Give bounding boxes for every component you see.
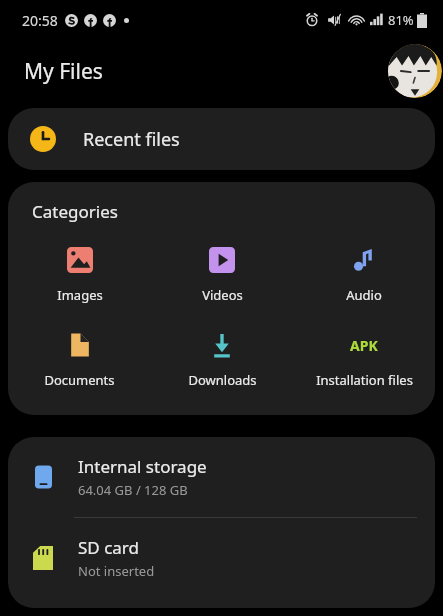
staticText: Images	[57, 286, 103, 304]
staticText: Downloads	[188, 371, 257, 389]
button[interactable]: Recent files	[8, 108, 435, 170]
staticText: Internal storage	[78, 455, 207, 478]
staticText: Audio	[346, 286, 382, 304]
button[interactable]: Documents	[8, 328, 151, 391]
button[interactable]: APK	[293, 328, 435, 391]
button[interactable]: Audio	[293, 243, 435, 306]
button[interactable]: Internal storage	[8, 437, 435, 517]
button[interactable]: Profile	[387, 43, 443, 99]
button[interactable]: Videos	[151, 243, 293, 306]
button[interactable]: My Files	[24, 57, 103, 86]
staticText: APK	[350, 336, 378, 355]
staticText: 81%	[388, 11, 414, 29]
staticText: SD card	[78, 536, 139, 559]
button[interactable]: SD card	[8, 518, 435, 598]
button[interactable]: Images	[8, 243, 151, 306]
staticText: My Files	[24, 57, 103, 86]
staticText: Installation files	[316, 371, 413, 389]
staticText: Not inserted	[78, 562, 155, 580]
staticText: 64.04 GB / 128 GB	[78, 481, 188, 499]
staticText: Recent files	[83, 127, 180, 152]
staticText: 20:58	[22, 11, 58, 30]
staticText: Videos	[202, 286, 243, 304]
staticText: Categories	[32, 200, 118, 223]
button[interactable]: Downloads	[151, 328, 293, 391]
staticText: Documents	[44, 371, 115, 389]
